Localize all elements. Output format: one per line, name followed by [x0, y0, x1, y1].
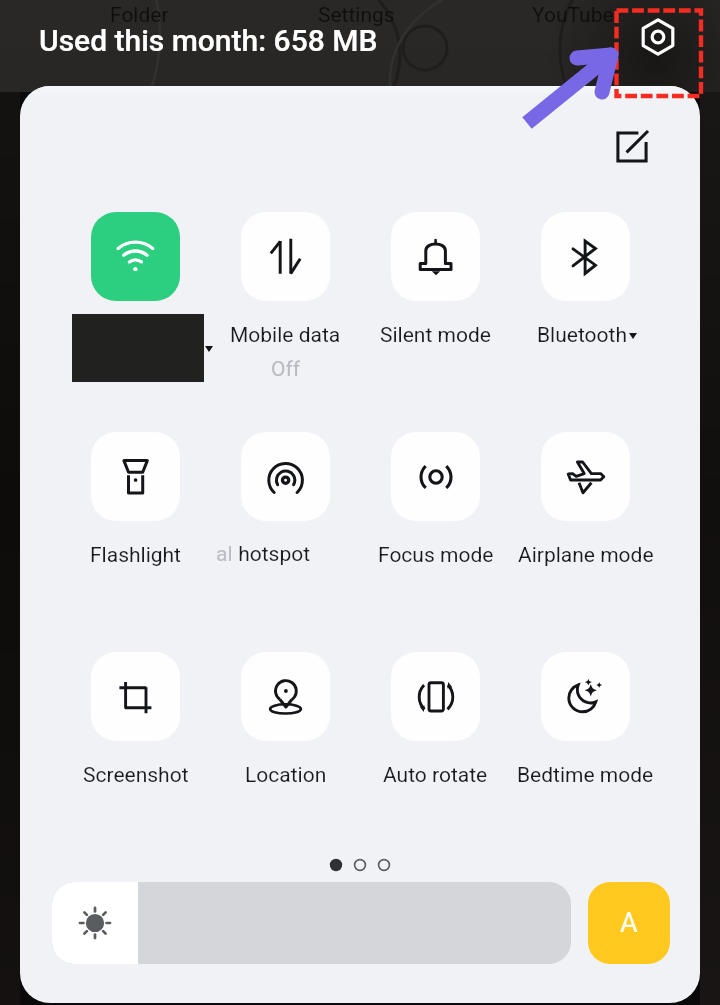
staticText: Location — [245, 763, 327, 788]
button[interactable]: Silent mode — [391, 212, 480, 301]
staticText: Used this month: 658 MB — [39, 23, 378, 58]
staticText: YouTube — [532, 3, 614, 28]
staticText: Screenshot — [83, 763, 189, 788]
button[interactable]: Location — [241, 652, 330, 741]
staticText: Auto rotate — [383, 763, 488, 788]
button[interactable]: Screenshot — [91, 652, 180, 741]
staticText: hotspot — [233, 542, 311, 567]
staticText: Off — [271, 357, 301, 382]
staticText: A — [620, 907, 638, 939]
staticText: Mobile data — [230, 323, 341, 348]
button[interactable]: Flashlight — [91, 432, 180, 521]
button[interactable]: Bedtime mode — [541, 652, 630, 741]
button[interactable]: Mobile data — [241, 212, 330, 301]
staticText: Settings — [318, 3, 395, 28]
staticText: Flashlight — [90, 543, 181, 568]
button[interactable]: Auto rotate — [391, 652, 480, 741]
button[interactable]: Personal hotspot — [241, 432, 330, 521]
staticText: Bluetooth — [537, 323, 627, 348]
button[interactable]: Bluetooth — [541, 212, 630, 301]
button[interactable]: Airplane mode — [541, 432, 630, 521]
button[interactable]: Edit quick settings — [604, 119, 660, 175]
staticText: Silent mode — [380, 323, 491, 348]
button[interactable]: A — [588, 882, 670, 964]
button[interactable]: Settings — [630, 9, 686, 65]
staticText: al — [216, 542, 233, 567]
button[interactable]: Brightness — [52, 882, 571, 964]
staticText: Bedtime mode — [517, 763, 654, 788]
button[interactable]: Wi-Fi — [91, 212, 180, 301]
staticText: Focus mode — [378, 543, 494, 568]
button[interactable]: Focus mode — [391, 432, 480, 521]
staticText: Folder — [110, 3, 169, 28]
staticText: Airplane mode — [518, 543, 654, 568]
